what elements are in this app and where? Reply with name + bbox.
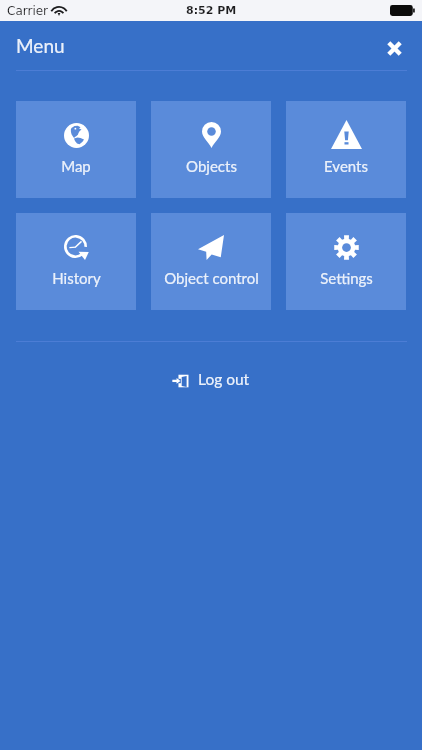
staticText: Events <box>324 157 368 175</box>
staticText: Carrier <box>7 4 49 18</box>
staticText: Object control <box>164 269 259 287</box>
staticText: Settings <box>320 269 373 287</box>
button[interactable]: Map <box>16 101 136 198</box>
staticText: Objects <box>186 157 237 175</box>
button[interactable]: Events <box>286 101 406 198</box>
staticText: Menu <box>16 34 65 57</box>
staticText: 8:52 PM <box>186 4 237 17</box>
button[interactable]: Close menu <box>380 34 408 62</box>
button[interactable]: Settings <box>286 213 406 310</box>
button[interactable]: Log out <box>0 364 422 392</box>
button[interactable]: History <box>16 213 136 310</box>
staticText: Log out <box>198 370 250 389</box>
staticText: History <box>52 269 101 287</box>
staticText: Map <box>61 157 91 175</box>
button[interactable]: Object control <box>151 213 271 310</box>
button[interactable]: Objects <box>151 101 271 198</box>
